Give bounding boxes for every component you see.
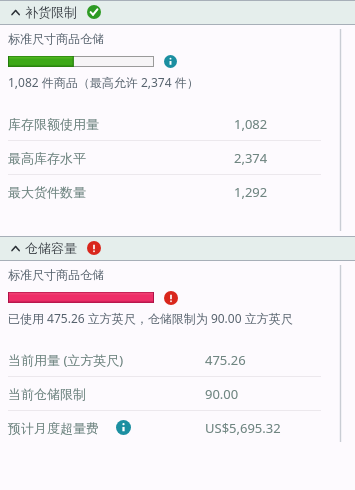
other: Alert <box>87 241 101 255</box>
other: Scroll <box>0 25 355 236</box>
staticText: 2,374 <box>234 149 268 167</box>
staticText: 当前仓储限制 <box>8 386 86 402</box>
staticText: 库存限额使用量 <box>8 116 99 132</box>
other: Collapse section <box>12 237 20 260</box>
button[interactable]: Collapse section <box>0 237 355 260</box>
staticText: 预计月度超量费 <box>8 420 99 436</box>
button[interactable]: 最高库存水平 <box>0 141 355 174</box>
button[interactable]: 当前用量 (立方英尺) <box>0 343 355 376</box>
staticText: 仓储容量 <box>25 240 77 256</box>
button[interactable]: Collapse section <box>0 1 355 24</box>
other: Alert <box>164 291 178 305</box>
other: Collapse section <box>12 1 20 24</box>
button[interactable]: 最大货件数量 <box>0 175 355 208</box>
staticText: 标准尺寸商品仓储 <box>8 267 104 282</box>
staticText: US$5,695.32 <box>205 419 281 437</box>
other: Scroll <box>0 261 355 447</box>
other: OK <box>87 5 101 19</box>
staticText: 标准尺寸商品仓储 <box>8 31 104 46</box>
other: More information <box>164 55 177 68</box>
staticText: 1,082 件商品（最高允许 2,374 件） <box>8 74 199 90</box>
staticText: 475.26 <box>205 351 246 369</box>
staticText: 90.00 <box>205 385 239 403</box>
staticText: 已使用 475.26 立方英尺，仓储限制为 90.00 立方英尺 <box>8 310 293 326</box>
staticText: 最大货件数量 <box>8 184 86 200</box>
button[interactable]: 库存限额使用量 <box>0 107 355 140</box>
button[interactable]: 当前仓储限制 <box>0 377 355 410</box>
staticText: 当前用量 (立方英尺) <box>8 351 124 369</box>
staticText: 最高库存水平 <box>8 150 86 166</box>
staticText: 1,082 <box>234 115 268 133</box>
button[interactable]: 预计月度超量费 <box>0 411 355 444</box>
other: More information <box>116 420 131 435</box>
staticText: 补货限制 <box>25 4 77 20</box>
staticText: 1,292 <box>234 183 268 201</box>
